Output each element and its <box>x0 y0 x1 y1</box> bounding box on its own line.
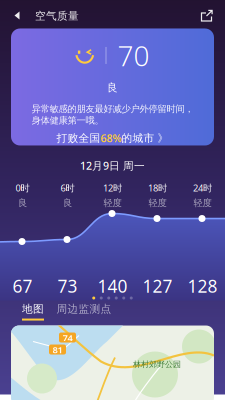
staticText: 70 <box>117 37 149 74</box>
button[interactable]: 地图 <box>13 300 53 322</box>
staticText: 良 <box>63 197 72 208</box>
button[interactable]: 周边监测点 <box>53 300 115 322</box>
staticText: 12月9日 周一 <box>80 158 145 173</box>
staticText: 73 <box>57 274 77 297</box>
staticText: 67 <box>12 274 32 297</box>
staticText: 6时 <box>60 182 74 194</box>
staticText: 打败全国 <box>56 131 100 145</box>
staticText: 地图 <box>22 302 44 316</box>
staticText: 18时 <box>148 182 167 194</box>
staticText: 异常敏感的朋友最好减少户外停留时间，身体健康第一哦。 <box>31 103 193 126</box>
staticText: 周边监测点 <box>56 302 111 316</box>
staticText: 127 <box>142 274 172 297</box>
staticText: 的城市 》 <box>121 131 168 145</box>
button[interactable]: 返回 <box>0 0 35 28</box>
staticText: 0时 <box>15 182 29 194</box>
staticText: 空气质量 <box>35 9 79 22</box>
staticText: 良 <box>107 81 118 94</box>
staticText: 轻度 <box>103 197 121 208</box>
staticText: 24时 <box>193 182 212 194</box>
staticText: 128 <box>187 274 217 297</box>
staticText: 轻度 <box>148 197 166 208</box>
staticText: 140 <box>97 274 127 297</box>
button[interactable]: 分享 <box>189 0 225 27</box>
staticText: 81 <box>52 343 62 356</box>
staticText: 轻度 <box>193 197 211 208</box>
staticText: 68% <box>100 131 121 145</box>
staticText: 林村郊野公园 <box>133 359 181 369</box>
staticText: 74 <box>62 331 72 344</box>
staticText: 12时 <box>103 182 122 194</box>
button[interactable]: 打败全国 <box>11 126 214 150</box>
staticText: 良 <box>18 197 27 208</box>
